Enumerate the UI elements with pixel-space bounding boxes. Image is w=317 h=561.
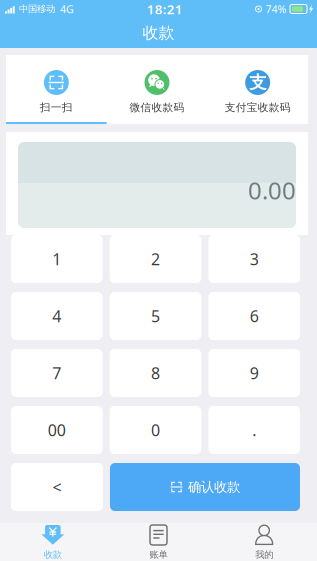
button[interactable]: 6 <box>208 292 300 340</box>
button[interactable]: 9 <box>208 349 300 397</box>
button[interactable]: 账单 <box>106 523 211 561</box>
staticText: 支 <box>249 72 266 93</box>
staticText: 中国移动 <box>19 3 55 15</box>
button[interactable]: 1 <box>11 235 103 283</box>
staticText: 支付宝收款码 <box>225 101 291 114</box>
staticText: 18:21 <box>147 0 183 18</box>
staticText: 收款 <box>44 549 62 560</box>
button[interactable]: 2 <box>110 235 201 283</box>
staticText: 扫一扫 <box>40 101 73 114</box>
button[interactable]: 4 <box>11 292 103 340</box>
staticText: 0 <box>151 419 160 441</box>
staticText: 收款 <box>142 23 174 43</box>
staticText: 0.00 <box>248 174 296 206</box>
staticText: 4 <box>52 305 61 327</box>
button[interactable]: 5 <box>110 292 201 340</box>
button[interactable]: 微信收款码 <box>107 55 207 124</box>
staticText: 2 <box>151 248 160 270</box>
staticText: 3 <box>250 248 259 270</box>
staticText: . <box>252 419 256 441</box>
staticText: 微信收款码 <box>129 101 184 114</box>
button[interactable]: 我的 <box>211 523 317 561</box>
button[interactable]: 收款 <box>0 523 106 561</box>
button[interactable]: 7 <box>11 349 103 397</box>
button[interactable]: 支 <box>207 55 308 124</box>
staticText: 00 <box>48 419 66 441</box>
staticText: 8 <box>151 362 160 384</box>
staticText: 9 <box>250 362 259 384</box>
staticText: 1 <box>52 248 61 270</box>
button[interactable]: 0 <box>110 406 201 454</box>
staticText: 我的 <box>255 549 273 560</box>
button[interactable]: 3 <box>208 235 300 283</box>
button[interactable]: 扫一扫 <box>6 55 107 124</box>
staticText: 7 <box>52 362 61 384</box>
staticText: < <box>52 476 61 498</box>
staticText: 账单 <box>149 549 167 560</box>
button[interactable]: 8 <box>110 349 201 397</box>
button[interactable]: 00 <box>11 406 103 454</box>
button[interactable]: 确认收款 <box>110 463 300 511</box>
button[interactable]: < <box>11 463 103 511</box>
staticText: 5 <box>151 305 160 327</box>
staticText: 4G <box>60 2 74 16</box>
staticText: 确认收款 <box>188 479 240 495</box>
staticText: 74% <box>265 2 286 16</box>
button[interactable]: . <box>208 406 300 454</box>
staticText: 6 <box>250 305 259 327</box>
